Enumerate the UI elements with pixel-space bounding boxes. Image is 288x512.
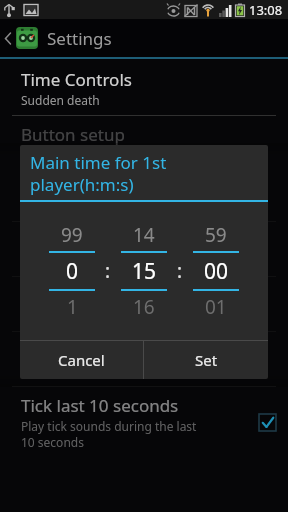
staticText: Button setup [21, 123, 125, 146]
staticText: : [177, 258, 183, 284]
staticText: 99 [61, 222, 83, 248]
button[interactable]: 59 [187, 219, 245, 323]
button[interactable]: Overtime for 1st player [0, 277, 288, 331]
button[interactable]: Set [144, 341, 268, 379]
staticText: Main time for 2nd player [21, 229, 219, 252]
staticText: Tick last 10 seconds [21, 394, 179, 417]
staticText: 0 [66, 257, 79, 286]
button[interactable]: Main time for 1st player [0, 167, 288, 221]
staticText: Main time for 1st player [21, 174, 212, 197]
staticText: 59 [205, 222, 227, 248]
other: Up [3, 28, 14, 48]
button[interactable]: Up [0, 19, 288, 57]
staticText: Time Controls [21, 68, 132, 91]
button[interactable]: Tick last 10 seconds [0, 387, 288, 457]
staticText: Sudden death [21, 92, 100, 108]
button[interactable]: Overtime for 2nd player [0, 332, 288, 386]
staticText: Overtime for 1st player [21, 284, 206, 307]
staticText: 1 [67, 294, 78, 320]
staticText: 14 [133, 222, 155, 248]
staticText: Main time for 1st player(h:m:s) [30, 151, 167, 196]
staticText: Settings [47, 27, 112, 50]
staticText: 01 [205, 294, 227, 320]
staticText: Set [195, 350, 218, 370]
staticText: 15 [132, 257, 157, 286]
button[interactable]: Button setup [0, 116, 288, 153]
button[interactable]: Tick last 10 seconds [259, 414, 276, 431]
staticText: 13:08 [249, 1, 283, 19]
staticText: Cancel [58, 350, 105, 370]
staticText: 00 [204, 257, 229, 286]
staticText: : [105, 258, 111, 284]
button[interactable]: Time Controls [0, 61, 288, 115]
button[interactable]: 14 [115, 219, 173, 323]
staticText: 16 [133, 294, 155, 320]
button[interactable]: Cancel [20, 341, 143, 379]
button[interactable]: 99 [43, 219, 101, 323]
staticText: 15 min [21, 198, 60, 214]
button[interactable]: Main time for 2nd player [0, 222, 288, 276]
staticText: Overtime for 2nd player [21, 339, 213, 362]
staticText: Play tick sounds during the last 10 seco… [21, 418, 197, 450]
